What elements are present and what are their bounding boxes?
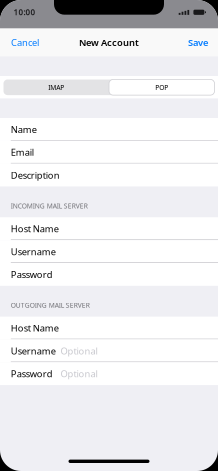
button[interactable]: Description xyxy=(0,164,218,186)
staticText: Username xyxy=(11,345,56,357)
staticText: Cancel xyxy=(11,36,39,49)
staticText: POP xyxy=(155,83,168,92)
staticText: INCOMING MAIL SERVER xyxy=(11,201,88,210)
staticText: Host Name xyxy=(11,222,59,235)
staticText: Optional xyxy=(60,367,97,380)
staticText: IMAP xyxy=(48,83,64,92)
staticText: Optional xyxy=(60,345,97,357)
staticText: Description xyxy=(11,169,60,181)
button[interactable]: Host Name xyxy=(0,317,218,339)
staticText: New Account xyxy=(79,36,139,49)
staticText: 10:00 xyxy=(13,7,35,17)
button[interactable]: POP xyxy=(109,79,214,95)
staticText: Username xyxy=(11,245,56,258)
button[interactable]: Email xyxy=(0,141,218,164)
button[interactable]: Password xyxy=(0,362,218,385)
staticText: Password xyxy=(11,367,53,380)
staticText: Name xyxy=(11,123,37,136)
button[interactable]: Name xyxy=(0,118,218,141)
staticText: Password xyxy=(11,268,53,281)
button[interactable]: Cancel xyxy=(0,28,50,56)
button[interactable]: Save xyxy=(178,28,218,56)
staticText: OUTGOING MAIL SERVER xyxy=(11,301,90,310)
button[interactable]: IMAP xyxy=(3,79,109,95)
staticText: Host Name xyxy=(11,322,59,334)
staticText: Email xyxy=(11,146,34,158)
button[interactable]: Username xyxy=(0,240,218,263)
button[interactable]: Password xyxy=(0,263,218,286)
staticText: Save xyxy=(188,36,208,49)
button[interactable]: Username xyxy=(0,339,218,362)
button[interactable]: Host Name xyxy=(0,217,218,240)
